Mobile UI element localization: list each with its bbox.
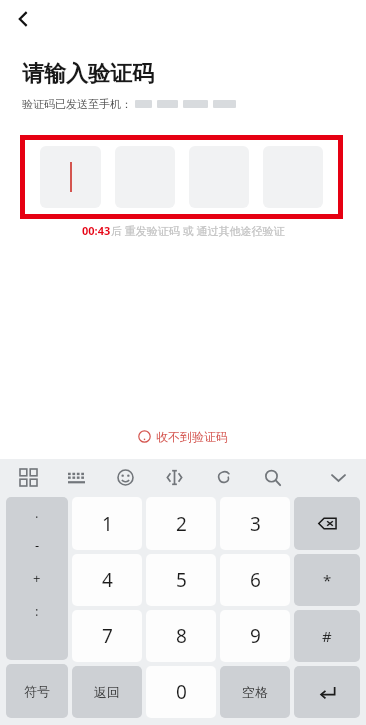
staticText: -: [35, 536, 40, 554]
staticText: .: [35, 504, 39, 522]
button[interactable]: .: [6, 497, 68, 529]
button[interactable]: Enter: [294, 666, 360, 718]
staticText: 00:43: [82, 223, 111, 238]
button[interactable]: Emoji: [111, 463, 139, 491]
staticText: 返回: [94, 684, 120, 700]
button[interactable]: 5: [146, 554, 216, 606]
staticText: 空格: [242, 684, 268, 700]
button[interactable]: 后 重发验证码 或 通过其他途径验证: [111, 223, 285, 238]
button[interactable]: Move cursor: [160, 463, 188, 491]
button[interactable]: 1: [72, 497, 142, 550]
button[interactable]: -: [6, 529, 68, 561]
staticText: 5: [176, 567, 187, 593]
staticText: 9: [250, 623, 261, 649]
staticText: 7: [102, 623, 113, 649]
staticText: 收不到验证码: [156, 429, 228, 444]
staticText: 0: [176, 679, 187, 705]
staticText: 6: [250, 567, 261, 593]
staticText: :: [35, 602, 39, 620]
button[interactable]: 9: [220, 610, 290, 662]
button[interactable]: 8: [146, 610, 216, 662]
button[interactable]: Apps: [14, 463, 42, 491]
button[interactable]: [40, 146, 101, 208]
button[interactable]: 4: [72, 554, 142, 606]
staticText: #: [322, 626, 332, 646]
button[interactable]: 7: [72, 610, 142, 662]
staticText: 4: [102, 567, 113, 593]
staticText: 请输入验证码: [22, 60, 154, 88]
button[interactable]: 返回: [72, 666, 142, 718]
button[interactable]: Back: [4, 0, 42, 38]
staticText: 8: [176, 623, 187, 649]
button[interactable]: Keyboard layout: [62, 463, 90, 491]
staticText: *: [323, 570, 332, 590]
staticText: 符号: [24, 683, 50, 699]
button[interactable]: Hide keyboard: [324, 463, 352, 491]
button[interactable]: Delete: [294, 497, 360, 550]
staticText: 2: [176, 511, 187, 537]
button[interactable]: Clipboard: [209, 463, 237, 491]
button[interactable]: 2: [146, 497, 216, 550]
staticText: 1: [102, 511, 113, 537]
button[interactable]: Search: [258, 463, 286, 491]
staticText: 3: [250, 511, 261, 537]
button[interactable]: 符号: [6, 664, 68, 718]
button[interactable]: 收不到验证码: [138, 429, 228, 444]
button[interactable]: #: [294, 610, 360, 662]
button[interactable]: 3: [220, 497, 290, 550]
button[interactable]: 6: [220, 554, 290, 606]
button[interactable]: 0: [146, 666, 216, 718]
staticText: +: [33, 569, 41, 587]
button[interactable]: :: [6, 594, 68, 627]
staticText: 验证码已发送至手机：: [22, 97, 132, 111]
button[interactable]: *: [294, 554, 360, 606]
button[interactable]: 空格: [220, 666, 290, 718]
button[interactable]: +: [6, 561, 68, 594]
